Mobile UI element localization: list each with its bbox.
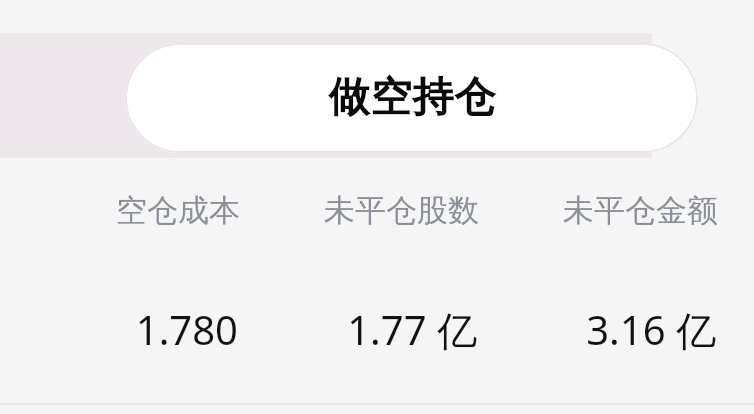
staticText: 空仓成本 — [116, 191, 240, 230]
staticText: 1.780 — [135, 302, 238, 356]
staticText: 1.77 亿 — [347, 302, 477, 357]
staticText: 未平仓金额 — [563, 191, 718, 230]
staticText: 未平仓股数 — [324, 191, 479, 230]
staticText: 3.16 亿 — [586, 302, 716, 357]
staticText: 做空持仓 — [328, 72, 496, 124]
button[interactable]: 做空持仓 — [125, 43, 698, 153]
